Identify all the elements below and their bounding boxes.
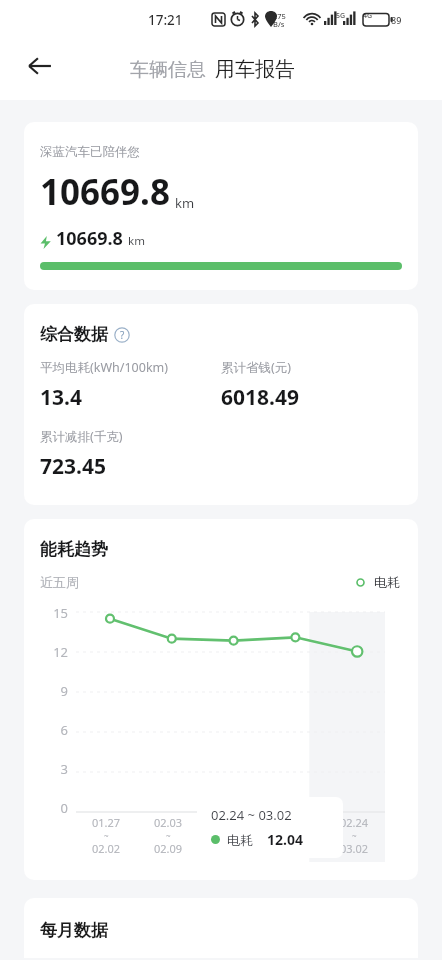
staticText: 深蓝汽车已陪伴您 — [40, 144, 140, 160]
staticText: 电耗 — [227, 832, 253, 848]
staticText: 10669.8 — [56, 226, 123, 251]
staticText: 6018.49 — [221, 383, 299, 412]
staticText: km — [175, 194, 195, 212]
staticText: 03.02 — [340, 841, 369, 856]
staticText: 用车报告 — [215, 57, 295, 82]
button[interactable]: 深蓝汽车已陪伴您 — [24, 122, 418, 290]
staticText: 9 — [60, 682, 68, 700]
button[interactable]: Back — [14, 40, 66, 92]
staticText: 累计省钱(元) — [221, 359, 292, 376]
staticText: ~ — [290, 830, 295, 841]
staticText: 每月数据 — [40, 920, 108, 941]
staticText: 02.09 — [154, 841, 183, 856]
staticText: 12 — [53, 643, 68, 661]
staticText: 车辆信息 — [130, 58, 206, 82]
staticText: 02.23 — [278, 841, 307, 856]
staticText: 5G — [336, 11, 346, 21]
staticText: 275 — [273, 11, 286, 21]
staticText: 02.10 — [216, 815, 245, 830]
button[interactable]: 用车报告 — [215, 57, 295, 82]
staticText: ? — [120, 328, 125, 342]
staticText: km — [128, 233, 145, 249]
staticText: 13.4 — [40, 383, 82, 412]
staticText: 4G — [363, 11, 373, 21]
staticText: 17:21 — [148, 11, 183, 29]
staticText: 01.27 — [92, 815, 121, 830]
staticText: 02.03 — [154, 815, 183, 830]
staticText: 15 — [53, 604, 68, 622]
staticText: ~ — [228, 830, 233, 841]
staticText: 近五周 — [40, 574, 79, 590]
staticText: 12.04 — [267, 830, 303, 849]
staticText: 02.24 — [340, 815, 369, 830]
staticText: 电耗 — [374, 574, 400, 590]
staticText: B/s — [273, 19, 285, 29]
staticText: ~ — [104, 830, 109, 841]
button[interactable]: 电耗 — [356, 574, 400, 590]
staticText: 89 — [391, 14, 402, 26]
staticText: 0 — [60, 799, 68, 817]
staticText: 02.17 — [278, 815, 307, 830]
staticText: 能耗趋势 — [40, 539, 108, 560]
staticText: 综合数据 — [40, 324, 108, 345]
staticText: ~ — [352, 830, 357, 841]
staticText: 3 — [60, 760, 68, 778]
staticText: ~ — [166, 830, 171, 841]
staticText: 02.02 — [92, 841, 121, 856]
staticText: 6 — [60, 721, 68, 739]
button[interactable]: 综合数据 — [24, 304, 418, 505]
staticText: 10669.8 — [40, 168, 170, 216]
button[interactable]: 车辆信息 — [130, 58, 206, 82]
staticText: 02.24 ~ 03.02 — [211, 806, 292, 824]
staticText: 累计减排(千克) — [40, 428, 123, 445]
staticText: 02.16 — [216, 841, 245, 856]
button[interactable]: Info — [114, 327, 130, 343]
staticText: 723.45 — [40, 452, 106, 481]
staticText: 平均电耗(kWh/100km) — [40, 359, 168, 376]
